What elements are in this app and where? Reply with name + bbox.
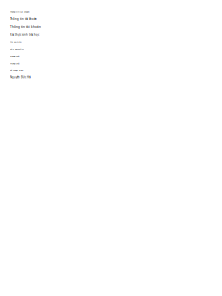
staticText: Nguyễn Đức Hải <box>10 76 31 79</box>
staticText: Thông tin tài khoản <box>10 17 37 21</box>
staticText: Trang chủ <box>10 55 19 58</box>
staticText: Xác thực sinh trắc học <box>10 33 39 36</box>
staticText: Kỹ thuật viên <box>10 69 23 72</box>
staticText: TÀI KHOẢN <box>10 40 22 43</box>
staticText: Thông tin tài khoản <box>10 10 29 13</box>
staticText: TÀI KHOẢN <box>10 47 24 51</box>
staticText: Trang chủ <box>10 62 19 65</box>
staticText: Thông tin tài khoản <box>10 25 41 29</box>
